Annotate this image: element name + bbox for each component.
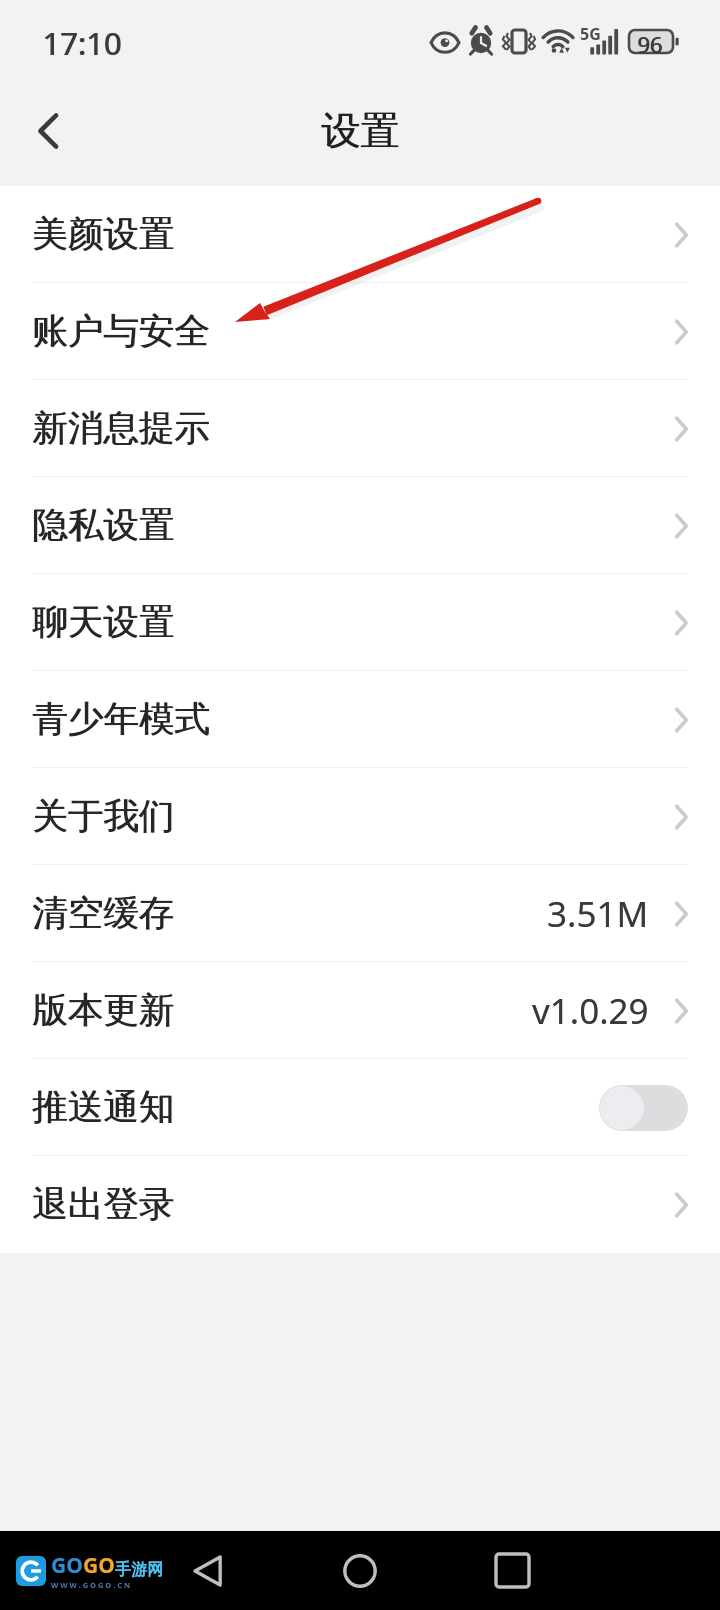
button[interactable]: 聊天设置 <box>0 574 720 671</box>
staticText: GO <box>51 1551 83 1580</box>
button[interactable]: 美颜设置 <box>0 186 720 283</box>
staticText: 版本更新 <box>32 988 174 1033</box>
staticText: 美颜设置 <box>33 212 175 257</box>
staticText: 5G <box>580 23 601 45</box>
staticText: 隐私设置 <box>32 503 174 548</box>
staticText: 新消息提示 <box>33 406 211 451</box>
staticText: 关于我们 <box>33 794 175 839</box>
button[interactable]: Toggle push notification <box>599 1085 688 1131</box>
staticText: 青少年模式 <box>32 697 210 742</box>
staticText: 设置 <box>322 106 400 155</box>
staticText: 手游网 <box>115 1560 163 1580</box>
staticText: 聊天设置 <box>33 600 175 645</box>
button[interactable]: Back <box>168 1531 248 1610</box>
staticText: 退出登录 <box>33 1182 175 1227</box>
button[interactable]: Back <box>0 88 96 184</box>
staticText: v1.0.29 <box>532 987 649 1035</box>
staticText: 17:10 <box>42 22 122 64</box>
staticText: 隐私设置 <box>33 503 175 548</box>
staticText: 新消息提示 <box>32 406 210 451</box>
button[interactable]: 青少年模式 <box>0 671 720 768</box>
staticText: 3.51M <box>547 890 649 938</box>
button[interactable]: 关于我们 <box>0 768 720 865</box>
staticText: 清空缓存 <box>32 891 174 936</box>
staticText: 青少年模式 <box>33 697 211 742</box>
button[interactable]: 推送通知 <box>0 1059 720 1156</box>
staticText: 17:10 <box>43 22 123 64</box>
staticText: 96 <box>637 29 663 59</box>
button[interactable]: 版本更新 <box>0 962 720 1059</box>
staticText: v1.0.29 <box>532 987 649 1035</box>
button[interactable]: 退出登录 <box>0 1156 720 1253</box>
button[interactable]: 隐私设置 <box>0 477 720 574</box>
button[interactable]: Recents <box>472 1531 552 1610</box>
button[interactable]: 清空缓存 <box>0 865 720 962</box>
button[interactable]: 账户与安全 <box>0 283 720 380</box>
staticText: W W W . G O G O . C N <box>51 1580 131 1590</box>
staticText: GO <box>83 1551 115 1580</box>
staticText: 推送通知 <box>33 1085 175 1130</box>
staticText: 96 <box>638 29 664 59</box>
staticText: 清空缓存 <box>33 891 175 936</box>
staticText: 账户与安全 <box>32 309 210 354</box>
staticText: 退出登录 <box>32 1182 174 1227</box>
staticText: 3.51M <box>547 890 649 938</box>
staticText: 推送通知 <box>32 1085 174 1130</box>
staticText: 关于我们 <box>32 794 174 839</box>
staticText: 版本更新 <box>33 988 175 1033</box>
button[interactable]: 新消息提示 <box>0 380 720 477</box>
staticText: 账户与安全 <box>33 309 211 354</box>
staticText: 设置 <box>321 106 399 155</box>
button[interactable]: Home <box>320 1531 400 1610</box>
staticText: 聊天设置 <box>32 600 174 645</box>
staticText: 美颜设置 <box>32 212 174 257</box>
